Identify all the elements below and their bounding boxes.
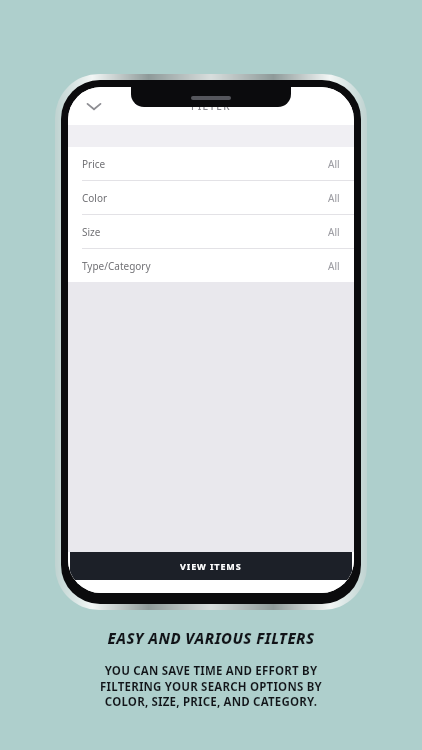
staticText: Size (82, 225, 101, 239)
staticText: FILTER (191, 99, 231, 113)
button[interactable]: VIEW ITEMS (70, 552, 352, 580)
staticText: Color (82, 191, 108, 205)
staticText: All (328, 225, 340, 239)
button[interactable]: Collapse (78, 90, 110, 122)
button[interactable]: Color (68, 181, 354, 214)
staticText: EASY AND VARIOUS FILTERS (0, 628, 422, 648)
staticText: Price (82, 157, 106, 171)
button[interactable]: Size (68, 215, 354, 248)
staticText: VIEW ITEMS (180, 560, 242, 572)
button[interactable]: Price (68, 147, 354, 180)
staticText: All (328, 191, 340, 205)
staticText: YOU CAN SAVE TIME AND EFFORT BY FILTERIN… (0, 663, 422, 709)
staticText: Type/Category (82, 259, 151, 273)
button[interactable]: Type/Category (68, 249, 354, 282)
staticText: All (328, 157, 340, 171)
staticText: All (328, 259, 340, 273)
